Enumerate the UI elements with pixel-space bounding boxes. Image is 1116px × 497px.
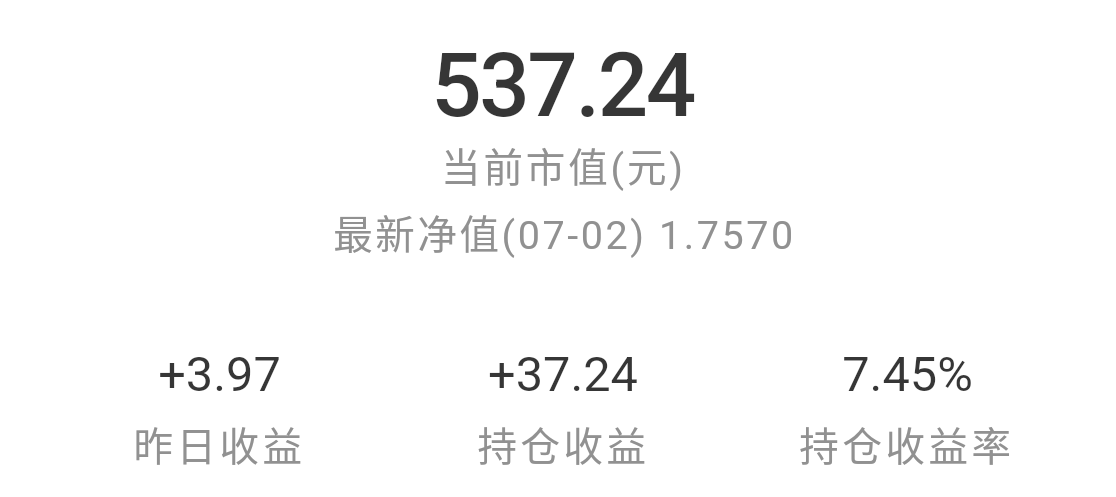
- staticText: 7.45%: [842, 346, 973, 403]
- staticText: 537.24: [431, 33, 694, 137]
- staticText: 昨日收益: [133, 415, 306, 472]
- staticText: 持仓收益: [477, 415, 650, 472]
- staticText: 持仓收益率: [799, 415, 1015, 472]
- button[interactable]: +37.24: [391, 344, 735, 474]
- button[interactable]: +3.97: [47, 344, 391, 474]
- staticText: 最新净值(07-02) 1.7570: [333, 203, 796, 260]
- staticText: +3.97: [158, 346, 281, 403]
- staticText: 当前市值(元): [441, 136, 686, 193]
- button[interactable]: 7.45%: [735, 344, 1079, 474]
- staticText: +37.24: [488, 346, 638, 403]
